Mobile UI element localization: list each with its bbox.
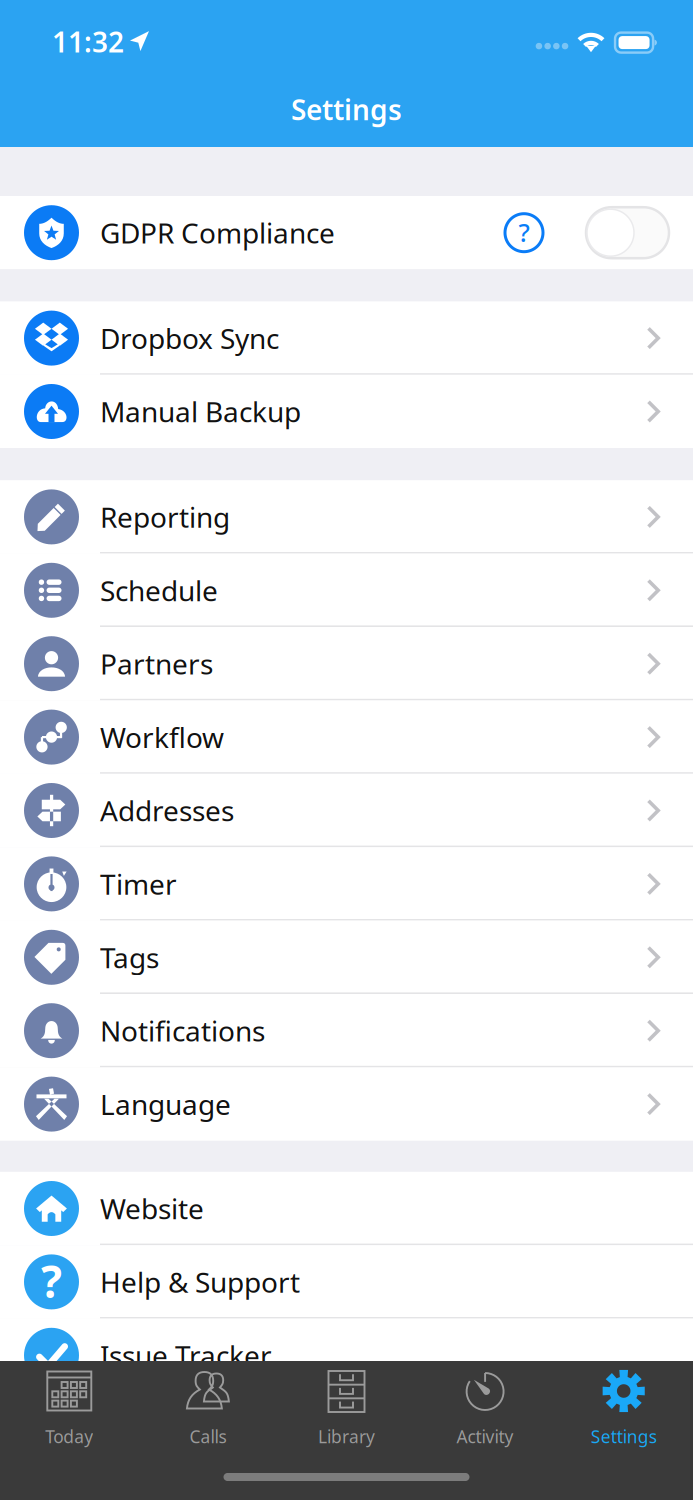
button[interactable]: Activity bbox=[416, 1368, 554, 1448]
staticText: Settings bbox=[591, 1425, 657, 1448]
button[interactable]: Settings bbox=[554, 1368, 693, 1448]
staticText: Manual Backup bbox=[100, 393, 301, 430]
staticText: 11:32 bbox=[52, 23, 124, 60]
staticText: Schedule bbox=[100, 572, 218, 609]
staticText: Workflow bbox=[100, 718, 224, 756]
button[interactable]: Calls bbox=[139, 1368, 277, 1448]
button[interactable]: Library bbox=[277, 1368, 416, 1448]
button[interactable]: GDPR Compliance bbox=[0, 196, 693, 269]
staticText: Dropbox Sync bbox=[100, 319, 279, 357]
staticText: Partners bbox=[100, 645, 213, 682]
button[interactable]: Notifications bbox=[0, 994, 693, 1067]
button[interactable]: Dropbox Sync bbox=[0, 301, 693, 375]
staticText: Settings bbox=[291, 91, 402, 128]
staticText: ? bbox=[518, 215, 529, 249]
button[interactable]: Workflow bbox=[0, 700, 693, 774]
button[interactable]: Reporting bbox=[0, 480, 693, 554]
staticText: Tags bbox=[100, 939, 159, 976]
staticText: Issue Tracker bbox=[100, 1337, 272, 1374]
staticText: Today bbox=[45, 1425, 93, 1448]
staticText: Timer bbox=[100, 865, 177, 902]
staticText: Website bbox=[100, 1190, 204, 1227]
button[interactable]: Issue Tracker bbox=[0, 1319, 693, 1392]
button[interactable]: Timer bbox=[0, 847, 693, 921]
staticText: Reporting bbox=[100, 498, 230, 535]
button[interactable]: Website bbox=[0, 1172, 693, 1245]
button[interactable]: Manual Backup bbox=[0, 375, 693, 448]
staticText: Help & Support bbox=[100, 1263, 300, 1300]
staticText: Calls bbox=[189, 1425, 226, 1448]
staticText: Addresses bbox=[100, 792, 234, 829]
button[interactable]: Today bbox=[0, 1368, 139, 1448]
staticText: GDPR Compliance bbox=[100, 214, 335, 251]
button[interactable]: GDPR Compliance toggle bbox=[586, 207, 669, 258]
button[interactable]: Addresses bbox=[0, 774, 693, 847]
button[interactable]: Help bbox=[503, 212, 545, 254]
staticText: Activity bbox=[457, 1425, 514, 1448]
staticText: Library bbox=[318, 1425, 375, 1448]
button[interactable]: Tags bbox=[0, 921, 693, 994]
staticText: Language bbox=[100, 1085, 231, 1123]
button[interactable]: Schedule bbox=[0, 554, 693, 627]
button[interactable]: Language bbox=[0, 1067, 693, 1141]
staticText: Notifications bbox=[100, 1012, 265, 1049]
button[interactable]: Partners bbox=[0, 627, 693, 700]
button[interactable]: ? bbox=[0, 1245, 693, 1319]
staticText: ? bbox=[41, 1252, 62, 1310]
